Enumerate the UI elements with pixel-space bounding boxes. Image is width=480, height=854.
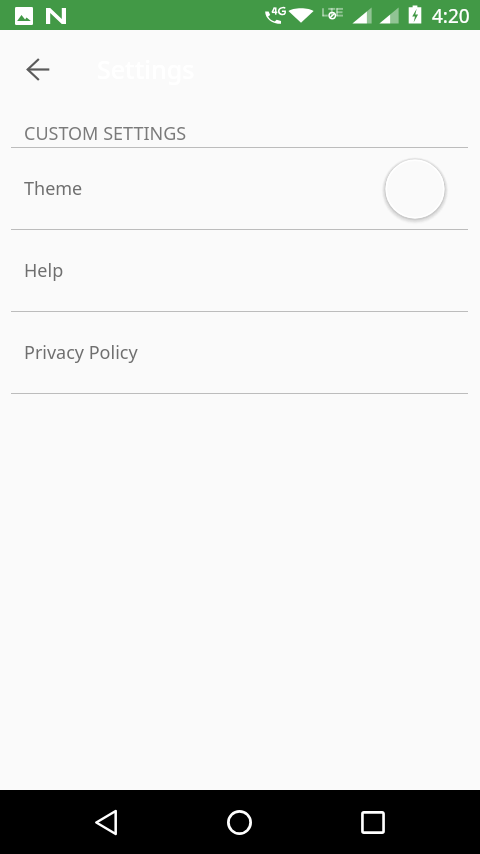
staticText: Privacy Policy <box>24 340 138 365</box>
button[interactable]: Recent apps <box>349 798 397 846</box>
staticText: CUSTOM SETTINGS <box>24 121 187 146</box>
staticText: Theme <box>24 176 83 201</box>
staticText: Help <box>24 258 64 283</box>
button[interactable]: Privacy Policy <box>0 312 480 394</box>
button[interactable]: Back <box>82 798 130 846</box>
button[interactable]: Theme <box>0 148 480 230</box>
button[interactable]: Help <box>0 230 480 312</box>
button[interactable]: Home <box>215 798 263 846</box>
button[interactable]: Navigate up <box>15 46 61 92</box>
staticText: 4:20 <box>432 3 470 29</box>
